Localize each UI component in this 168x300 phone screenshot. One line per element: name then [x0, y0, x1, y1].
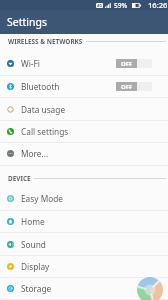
staticText: OFF: [121, 83, 133, 91]
staticText: 59%: [114, 1, 128, 10]
staticText: DEVICE: [8, 174, 31, 183]
staticText: Settings: [7, 15, 47, 29]
button[interactable]: Data usage: [0, 98, 168, 120]
button[interactable]: Sound: [0, 233, 168, 255]
staticText: Sound: [21, 239, 46, 250]
button[interactable]: Storage: [0, 277, 168, 299]
button[interactable]: Bluetooth: [0, 75, 168, 97]
button[interactable]: Toggle off: [116, 82, 152, 91]
button[interactable]: Call settings: [0, 120, 168, 142]
button[interactable]: More...: [0, 142, 168, 164]
staticText: Data usage: [21, 104, 66, 115]
button[interactable]: Display: [0, 255, 168, 277]
staticText: Display: [21, 261, 50, 272]
button[interactable]: Wi-Fi: [0, 52, 168, 74]
staticText: 4G: [97, 3, 103, 8]
button[interactable]: Easy Mode: [0, 187, 168, 209]
staticText: Storage: [21, 283, 52, 294]
staticText: Wi-Fi: [21, 58, 40, 69]
staticText: Bluetooth: [21, 81, 60, 92]
staticText: Easy Mode: [21, 193, 63, 204]
staticText: OFF: [121, 60, 133, 68]
button[interactable]: Home: [0, 210, 168, 232]
staticText: Home: [21, 216, 45, 227]
staticText: WIRELESS & NETWORKS: [8, 37, 83, 46]
staticText: More...: [21, 148, 49, 159]
staticText: Call settings: [21, 126, 69, 137]
staticText: 16:26: [148, 0, 168, 10]
button[interactable]: Toggle off: [116, 59, 152, 68]
